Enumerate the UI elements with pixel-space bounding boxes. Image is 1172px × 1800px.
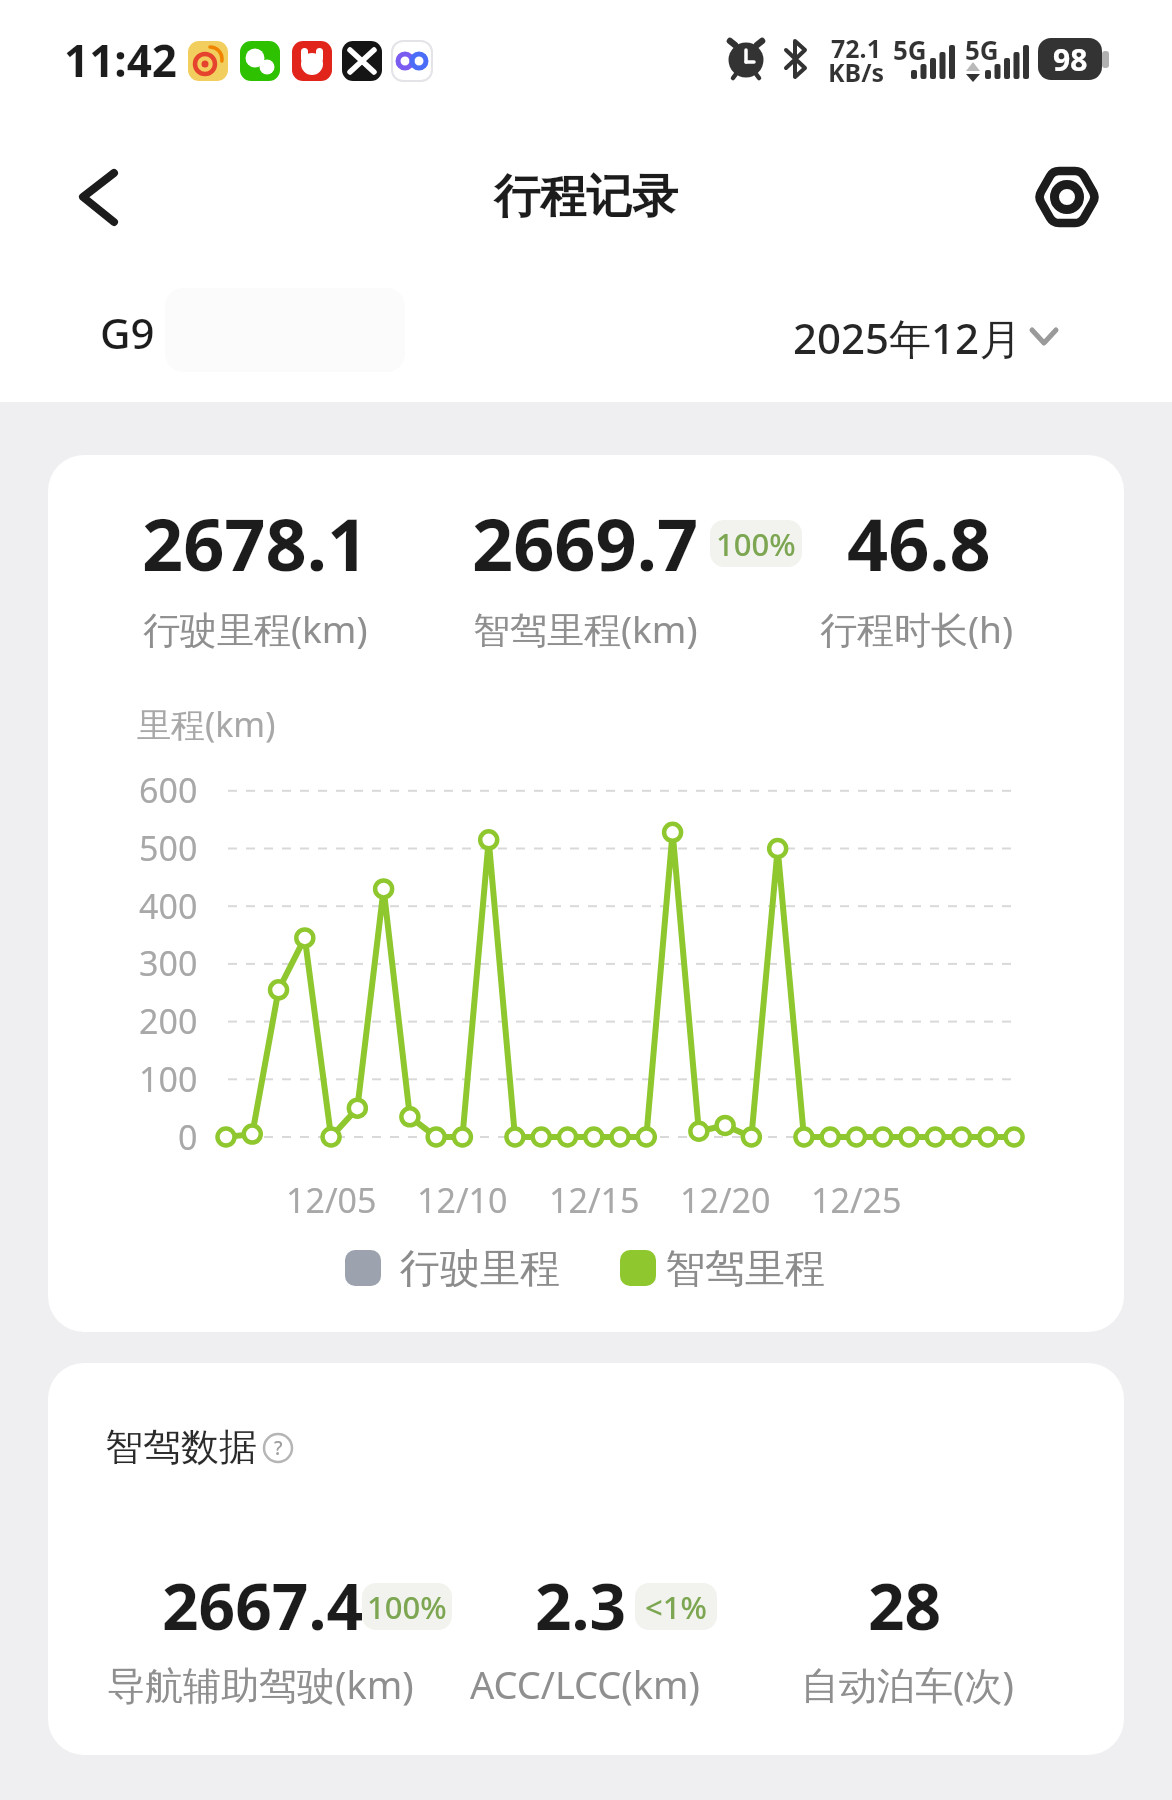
staticText: <1% <box>645 1586 707 1628</box>
staticText: 12/20 <box>680 1177 771 1223</box>
staticText: 2667.4 <box>162 1562 364 1649</box>
staticText: 行驶里程(km) <box>143 603 368 654</box>
staticText: 12/25 <box>811 1177 902 1223</box>
staticText: 12/15 <box>549 1177 640 1223</box>
staticText: 2669.7 <box>472 494 699 592</box>
staticText: 自动泊车(次) <box>801 1658 1014 1710</box>
staticText: 2678.1 <box>142 494 369 592</box>
staticText: 100 <box>139 1056 198 1102</box>
staticText: 0 <box>178 1114 198 1160</box>
staticText: 98 <box>1053 39 1088 80</box>
button[interactable] <box>62 162 132 232</box>
staticText: 智驾数据 <box>105 1423 257 1471</box>
staticText: 100% <box>367 1586 447 1628</box>
staticText: 11:42 <box>64 30 178 90</box>
button[interactable]: 2678.1 <box>48 455 1124 1332</box>
staticText: 72.1 <box>831 31 881 65</box>
staticText: 400 <box>139 883 198 929</box>
staticText: 行程时长(h) <box>820 603 1014 654</box>
staticText: 智驾里程(km) <box>473 603 698 654</box>
staticText: 200 <box>139 998 198 1044</box>
staticText: G9 <box>100 304 155 361</box>
staticText: 行程记录 <box>494 168 678 226</box>
staticText: 46.8 <box>847 494 991 592</box>
staticText: 5G <box>893 32 927 67</box>
staticText: 100% <box>716 523 796 565</box>
staticText: KB/s <box>828 55 885 89</box>
staticText: ACC/LCC(km) <box>470 1658 700 1710</box>
staticText: 500 <box>139 825 198 871</box>
staticText: 5G <box>965 32 999 67</box>
staticText: ? <box>274 1435 283 1461</box>
staticText: 行驶里程 <box>400 1243 560 1293</box>
button[interactable]: ? <box>262 1432 294 1464</box>
staticText: 里程(km) <box>137 701 276 747</box>
staticText: 导航辅助驾驶(km) <box>107 1658 414 1710</box>
button[interactable] <box>780 300 1070 374</box>
staticText: 2025年12月 <box>793 309 1022 366</box>
staticText: 28 <box>868 1562 942 1649</box>
button[interactable]: 智驾数据 <box>48 1363 1124 1755</box>
staticText: 600 <box>139 767 198 813</box>
staticText: 12/10 <box>417 1177 508 1223</box>
staticText: 智驾里程 <box>665 1243 825 1293</box>
button[interactable] <box>1034 164 1100 230</box>
staticText: 300 <box>139 940 198 986</box>
staticText: 12/05 <box>286 1177 377 1223</box>
staticText: 2.3 <box>535 1562 627 1649</box>
